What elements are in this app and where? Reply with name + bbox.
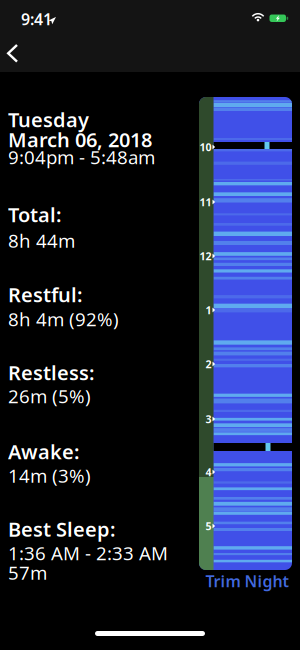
- staticText: 9:04pm - 5:48am: [8, 145, 155, 169]
- staticText: 5: [205, 519, 211, 533]
- staticText: Awake:: [8, 438, 80, 465]
- staticText: 8h 4m (92%): [8, 307, 119, 331]
- staticText: Tuesday: [8, 106, 89, 133]
- staticText: 1: [205, 303, 211, 317]
- button[interactable]: Back: [0, 38, 36, 74]
- staticText: 11: [199, 195, 211, 209]
- staticText: 2: [205, 357, 211, 371]
- staticText: March 06, 2018: [8, 126, 152, 153]
- staticText: Restful:: [8, 281, 83, 308]
- staticText: 12: [199, 249, 211, 263]
- staticText: 9:41: [21, 8, 52, 30]
- staticText: 10: [199, 140, 211, 154]
- staticText: 3: [205, 412, 211, 426]
- button[interactable]: Trim Night: [192, 571, 300, 591]
- staticText: Best Sleep:: [8, 516, 116, 542]
- staticText: 8h 44m: [8, 228, 75, 253]
- staticText: Restless:: [8, 359, 95, 386]
- staticText: 14m (3%): [8, 463, 91, 488]
- staticText: 57m: [8, 560, 47, 585]
- staticText: 4: [205, 465, 211, 479]
- staticText: 1:36 AM - 2:33 AM: [8, 541, 168, 565]
- staticText: Trim Night: [205, 570, 288, 592]
- staticText: Total:: [8, 201, 62, 228]
- staticText: 26m (5%): [8, 384, 91, 408]
